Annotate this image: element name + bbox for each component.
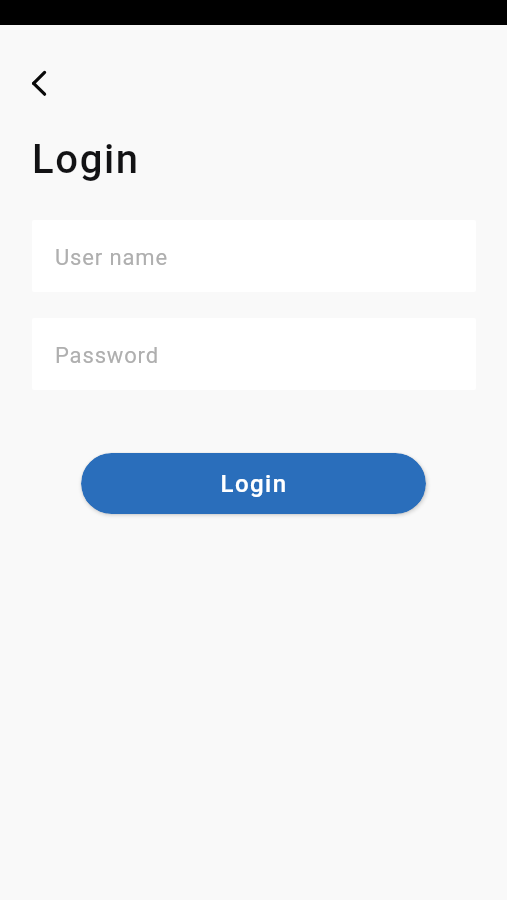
staticText: Login: [220, 470, 288, 498]
button[interactable]: User name: [32, 220, 476, 292]
button[interactable]: Login: [81, 453, 426, 514]
button[interactable]: Navigate back: [26, 64, 54, 102]
staticText: Password: [55, 343, 159, 369]
staticText: Login: [32, 136, 140, 183]
button[interactable]: Password: [32, 318, 476, 390]
staticText: User name: [55, 245, 168, 271]
